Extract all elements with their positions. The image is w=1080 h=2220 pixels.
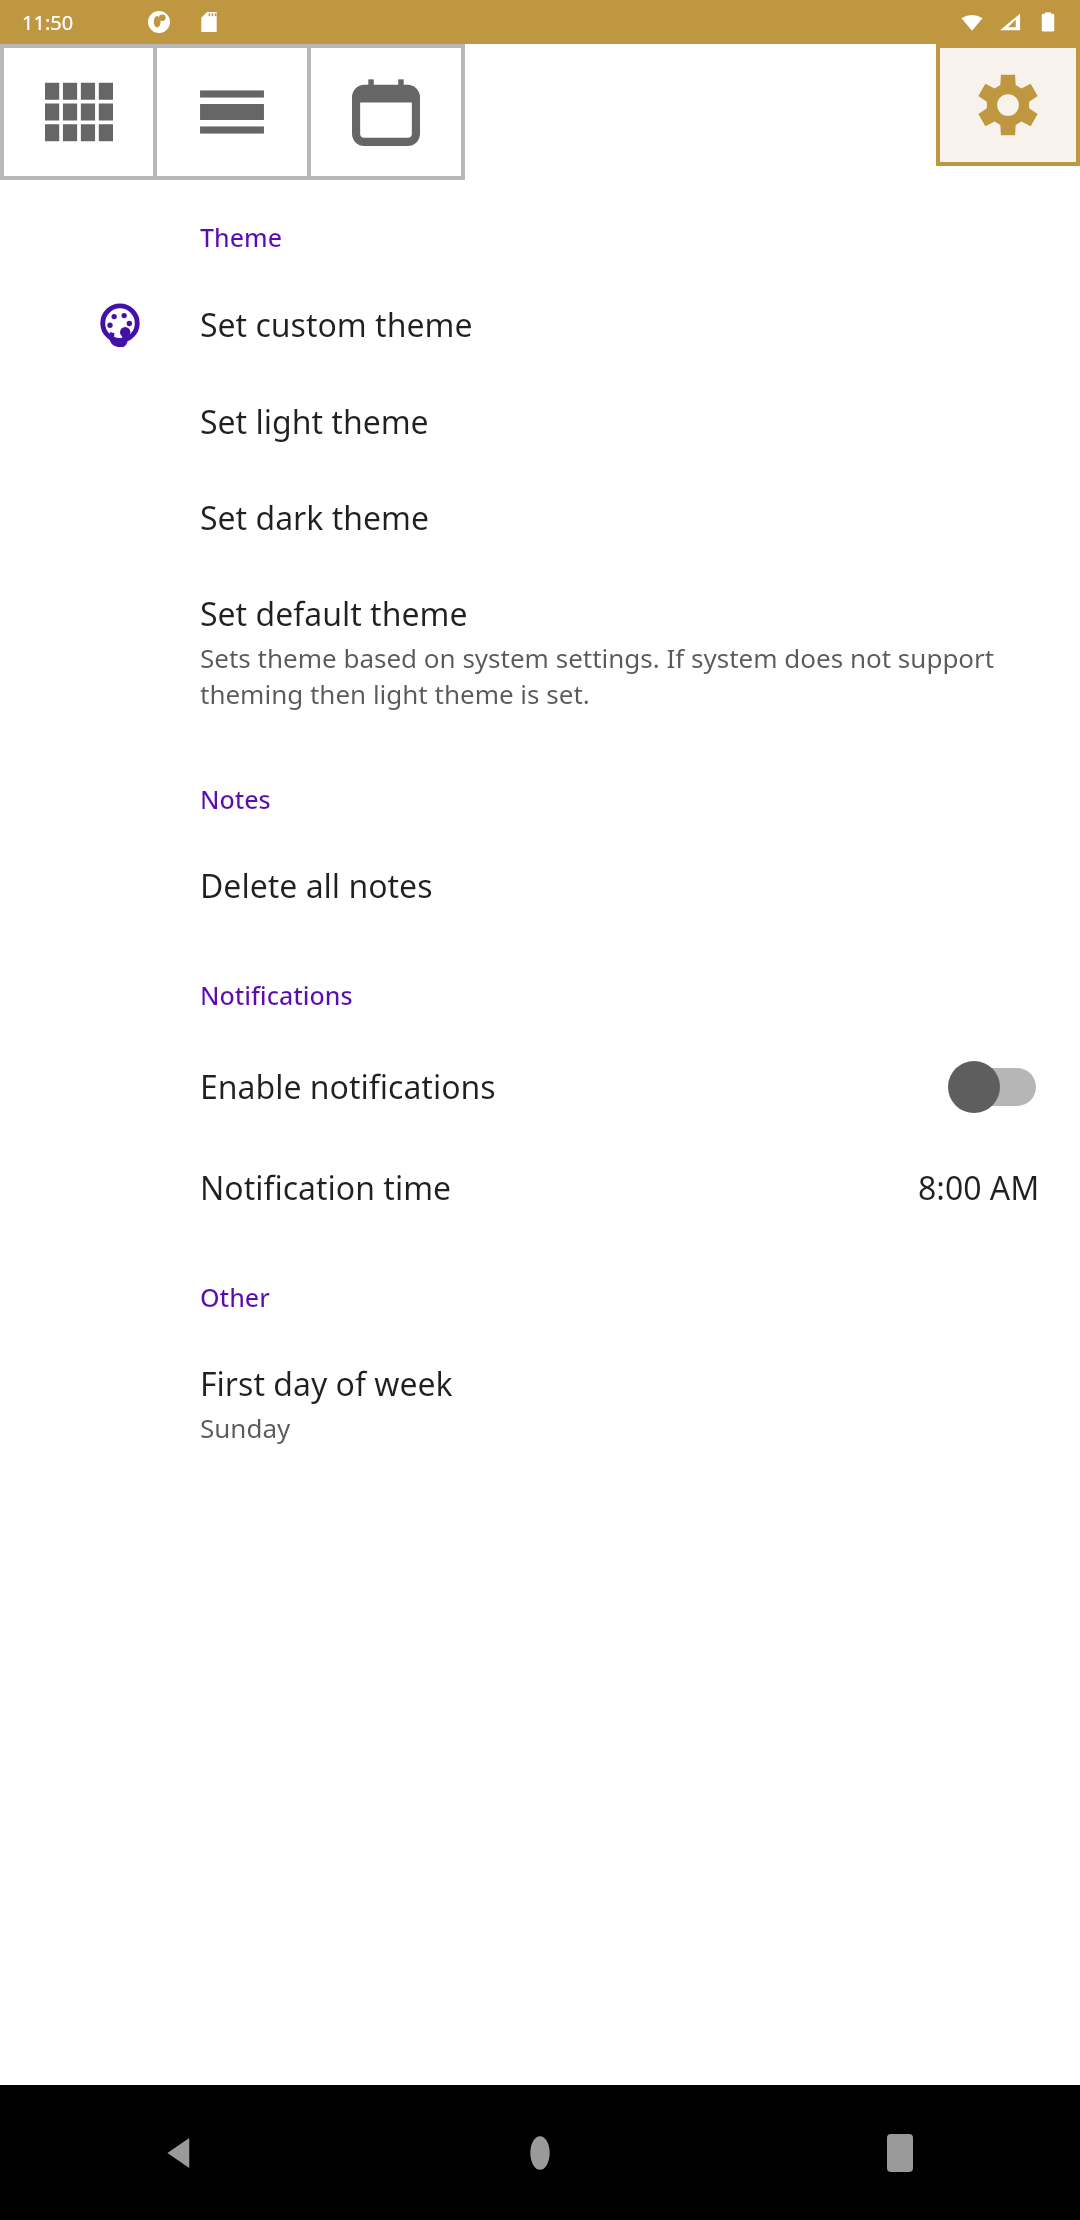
staticText: Theme	[200, 220, 283, 254]
staticText: Set light theme	[200, 400, 429, 444]
button[interactable]: Delete all notes	[0, 838, 1080, 934]
button[interactable]	[948, 1060, 1040, 1114]
staticText: Delete all notes	[200, 864, 433, 908]
staticText: Sunday	[200, 1410, 291, 1445]
staticText: First day of week	[200, 1362, 453, 1406]
button[interactable]: Set default theme	[0, 566, 1080, 738]
button[interactable]: Notification time	[0, 1140, 1080, 1236]
staticText: Notes	[200, 782, 271, 816]
button[interactable]: Enable notifications	[0, 1034, 1080, 1140]
button[interactable]: Recent apps	[720, 2085, 1080, 2220]
staticText: Other	[200, 1280, 270, 1314]
button[interactable]: Back	[0, 2085, 360, 2220]
button[interactable]: Set dark theme	[0, 470, 1080, 566]
staticText: Set custom theme	[200, 303, 473, 347]
button[interactable]: Grid view	[4, 48, 153, 176]
staticText: 8:00 AM	[918, 1166, 1040, 1210]
button[interactable]: Set light theme	[0, 374, 1080, 470]
staticText: Sets theme based on system settings. If …	[200, 640, 1040, 712]
staticText: Enable notifications	[200, 1065, 496, 1109]
button[interactable]: First day of week	[0, 1336, 1080, 1471]
button[interactable]: Calendar view	[311, 48, 461, 176]
button[interactable]: Home	[360, 2085, 720, 2220]
staticText: 11:50	[22, 9, 74, 36]
staticText: Notifications	[200, 978, 353, 1012]
button[interactable]: Settings	[940, 48, 1076, 162]
staticText: Set default theme	[200, 592, 468, 636]
staticText: Set dark theme	[200, 496, 430, 540]
button[interactable]: Set custom theme	[0, 276, 1080, 374]
button[interactable]: List view	[157, 48, 307, 176]
staticText: Notification time	[200, 1166, 452, 1210]
